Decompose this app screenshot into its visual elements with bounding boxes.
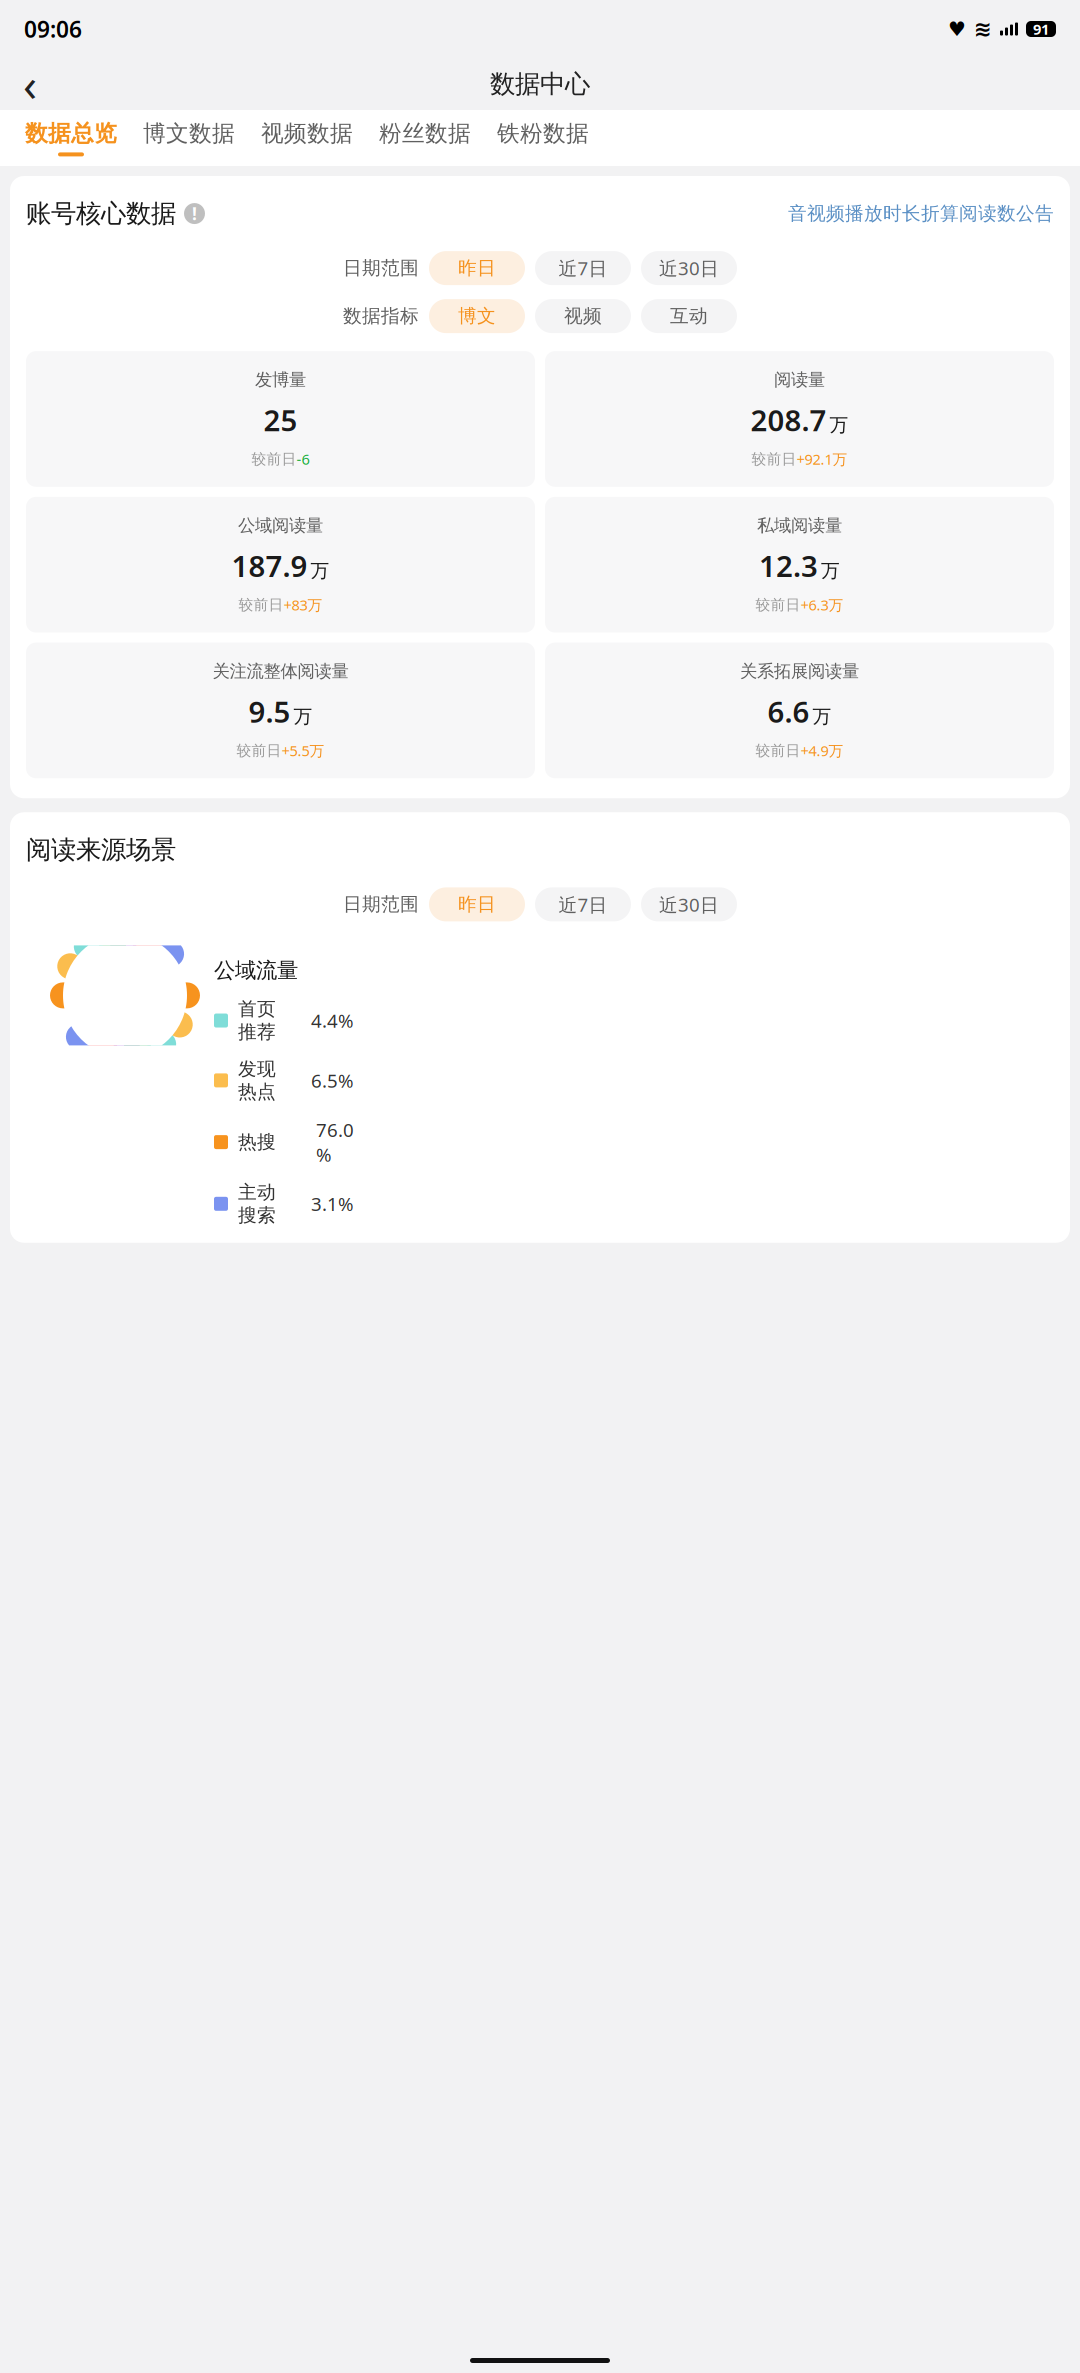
staticText: 互动	[670, 305, 708, 328]
staticText: 万	[829, 414, 848, 436]
staticText: 视频数据	[261, 120, 353, 147]
staticText: 关注流整体阅读量	[212, 661, 348, 682]
staticText: 数据中心	[490, 68, 590, 99]
button[interactable]: 互动	[641, 299, 737, 333]
staticText: 万	[812, 705, 831, 728]
staticText: 9.5	[248, 692, 290, 731]
button[interactable]: 数据总览	[12, 110, 130, 166]
staticText: 粉丝数据	[379, 120, 471, 147]
staticText: +92.1万	[796, 449, 847, 469]
staticText: 6.6	[767, 692, 809, 731]
staticText: 较前日	[251, 450, 296, 468]
staticText: ‹	[23, 54, 37, 114]
staticText: -6	[296, 449, 309, 469]
staticText: 阅读量	[774, 369, 825, 390]
staticText: 发现热点	[238, 1057, 276, 1103]
staticText: 较前日	[236, 741, 281, 759]
staticText: 3.1%	[311, 1191, 354, 1216]
button[interactable]: 近30日	[641, 251, 737, 285]
staticText: 近7日	[558, 892, 607, 917]
staticText: ♥	[948, 18, 966, 40]
staticText: 12.3	[759, 546, 818, 585]
button[interactable]: 近7日	[535, 887, 631, 921]
staticText: 昨日	[458, 257, 496, 280]
button[interactable]: 博文数据	[130, 110, 248, 166]
staticText: +83万	[283, 595, 322, 615]
staticText: 近30日	[659, 256, 719, 280]
button[interactable]: 博文	[429, 299, 525, 333]
staticText: 公域阅读量	[238, 515, 323, 536]
button[interactable]: 昨日	[429, 887, 525, 921]
staticText: +4.9万	[800, 741, 843, 760]
staticText: 首页推荐	[238, 998, 276, 1043]
staticText: 208.7	[750, 400, 826, 439]
staticText: +5.5万	[281, 741, 324, 760]
staticText: 4.4%	[311, 1008, 354, 1033]
staticText: 09:06	[24, 14, 82, 44]
staticText: 较前日	[751, 450, 796, 468]
staticText: 近7日	[558, 256, 607, 280]
button[interactable]: 视频	[535, 299, 631, 333]
button[interactable]: 粉丝数据	[366, 110, 484, 166]
staticText: 25	[263, 400, 297, 439]
staticText: 日期范围	[343, 893, 419, 916]
staticText: 账号核心数据	[26, 198, 176, 229]
staticText: 发博量	[255, 369, 306, 390]
button[interactable]: 昨日	[429, 251, 525, 285]
staticText: 博文数据	[143, 120, 235, 147]
staticText: 公域流量	[214, 957, 298, 984]
staticText: 关系拓展阅读量	[740, 661, 859, 682]
button[interactable]: 近30日	[641, 887, 737, 921]
staticText: 6.5%	[311, 1068, 354, 1093]
staticText: 主动搜索	[238, 1181, 276, 1227]
staticText: 万	[310, 559, 329, 582]
staticText: 铁粉数据	[497, 120, 589, 147]
button[interactable]: 视频数据	[248, 110, 366, 166]
staticText: +6.3万	[800, 595, 843, 615]
staticText: 昨日	[458, 893, 496, 916]
staticText: 阅读来源场景	[26, 834, 176, 865]
button[interactable]: 音视频播放时长折算阅读数公告	[788, 202, 1054, 225]
staticText: 76.0%	[316, 1117, 354, 1167]
staticText: 音视频播放时长折算阅读数公告	[788, 202, 1054, 225]
staticText: !	[192, 202, 197, 225]
staticText: 较前日	[755, 596, 800, 614]
staticText: 万	[293, 705, 312, 728]
staticText: 较前日	[238, 596, 283, 614]
staticText: 热搜	[238, 1131, 276, 1153]
staticText: 数据指标	[343, 305, 419, 328]
staticText: 较前日	[755, 741, 800, 759]
button[interactable]: Back	[8, 62, 52, 106]
staticText: 91	[1033, 19, 1049, 39]
staticText: ≋	[974, 17, 992, 41]
staticText: 博文	[458, 305, 496, 328]
staticText: 日期范围	[343, 257, 419, 280]
staticText: 近30日	[659, 892, 719, 917]
staticText: 万	[821, 559, 840, 582]
staticText: 187.9	[231, 546, 307, 585]
staticText: 数据总览	[25, 120, 117, 147]
button[interactable]: 铁粉数据	[484, 110, 602, 166]
staticText: 私域阅读量	[757, 515, 842, 536]
button[interactable]: Info	[184, 203, 205, 224]
staticText: 视频	[564, 305, 602, 328]
button[interactable]: 近7日	[535, 251, 631, 285]
